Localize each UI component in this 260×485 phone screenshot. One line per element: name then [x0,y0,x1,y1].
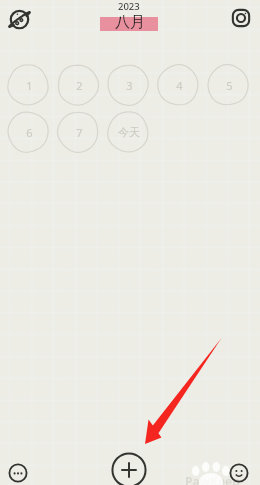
button[interactable]: Camera [230,7,252,29]
button[interactable]: 1 [6,63,50,107]
button[interactable]: 今天 [106,110,150,154]
staticText: 6 [26,125,33,140]
staticText: 5 [226,78,233,93]
button[interactable]: Planet [7,6,33,32]
staticText: 今天 [118,125,140,139]
button[interactable]: Profile [229,463,249,483]
button[interactable]: 4 [156,63,200,107]
staticText: 1 [26,78,33,93]
staticText: 3 [126,78,133,93]
button[interactable]: More options [8,463,28,483]
staticText: 八月 [115,13,145,32]
button[interactable]: 7 [56,110,100,154]
staticText: 2023 [118,0,140,13]
button[interactable]: 5 [206,63,250,107]
button[interactable]: 2 [56,63,100,107]
staticText: 4 [176,78,183,93]
button[interactable]: 6 [6,110,50,154]
staticText: 7 [76,125,83,140]
button[interactable]: 3 [106,63,150,107]
staticText: 2 [76,78,83,93]
button[interactable]: Add entry [111,452,147,485]
staticText: PawKeep [185,473,240,485]
